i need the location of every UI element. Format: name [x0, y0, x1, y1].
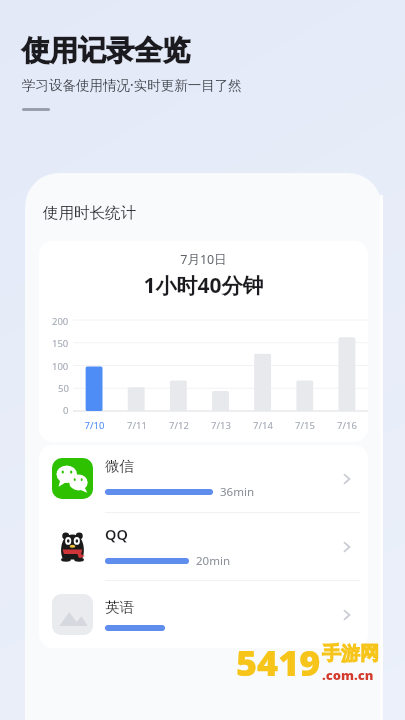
staticText: 200	[52, 315, 69, 328]
staticText: 7/11	[116, 419, 158, 432]
staticText: QQ	[105, 524, 128, 544]
staticText: 1小时40分钟	[39, 271, 368, 300]
staticText: .com.cn	[322, 666, 374, 684]
staticText: 7/14	[242, 419, 284, 432]
staticText: 50	[58, 382, 69, 395]
staticText: 使用时长统计	[43, 203, 136, 223]
staticText: 20min	[196, 553, 230, 569]
button[interactable]: 英语	[39, 581, 368, 648]
other: 查看详情	[338, 538, 356, 556]
staticText: 英语	[105, 598, 134, 616]
staticText: 7/12	[158, 419, 200, 432]
staticText: 0	[63, 404, 69, 417]
staticText: 学习设备使用情况·实时更新一目了然	[22, 76, 242, 94]
staticText: 7月10日	[39, 251, 368, 268]
staticText: 7/10	[73, 419, 116, 432]
staticText: 36min	[220, 484, 254, 500]
other: 查看详情	[338, 606, 356, 624]
staticText: 7/13	[200, 419, 242, 432]
staticText: 使用记录全览	[22, 33, 190, 68]
button[interactable]: QQ	[39, 513, 368, 580]
other: 查看详情	[338, 470, 356, 488]
staticText: 微信	[105, 457, 134, 475]
staticText: 100	[52, 360, 69, 373]
staticText: 150	[52, 337, 69, 350]
staticText: 7/16	[326, 419, 368, 432]
button[interactable]: 微信	[39, 445, 368, 512]
staticText: 5419	[236, 638, 321, 687]
staticText: 手游网	[322, 642, 379, 666]
staticText: 7/15	[284, 419, 326, 432]
